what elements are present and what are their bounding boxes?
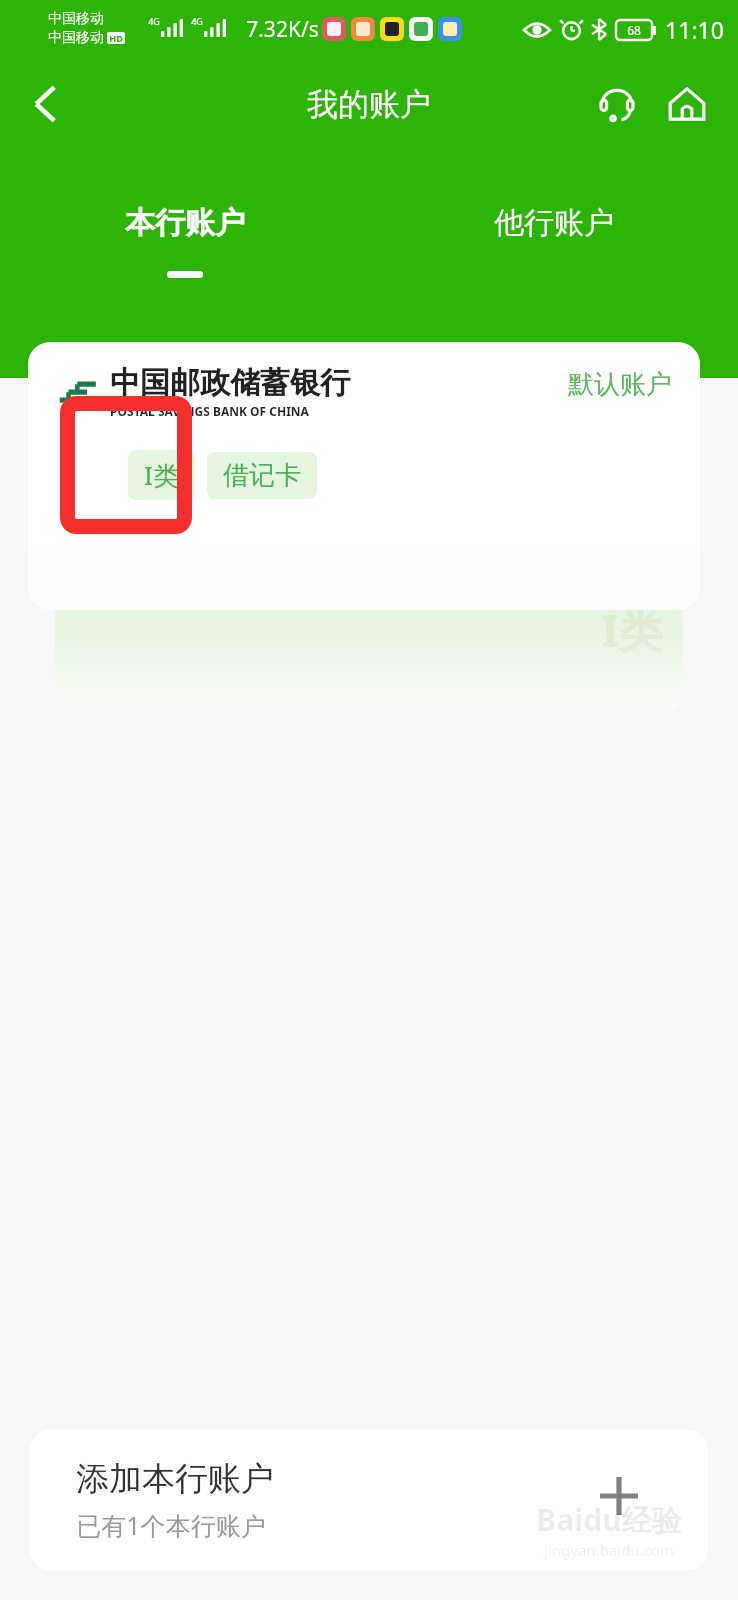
staticText: 已有1个本行账户 [76,1508,266,1542]
button[interactable]: Customer service [586,73,648,135]
staticText: 中国移动 [48,10,104,28]
staticText: 他行账户 [494,204,614,242]
staticText: 借记卡 [223,459,301,492]
button[interactable]: 本行账户 [0,188,369,308]
staticText: 11:10 [665,14,724,45]
staticText: 7.32K/s [246,15,319,44]
staticText: 4G [191,15,203,27]
staticText: HD [109,32,123,44]
staticText: Baidu经验 [536,1499,682,1540]
staticText: 4G [148,15,160,27]
staticText: jingyan.baidu.com [544,1540,674,1560]
button[interactable]: 他行账户 [369,188,738,308]
staticText: I类 [144,457,179,493]
staticText: 我的账户 [307,85,431,124]
button[interactable]: 添加本行账户 [30,1430,708,1570]
staticText: I类 [601,600,663,660]
staticText: 中国移动 [48,29,104,47]
button[interactable]: Back [14,73,76,135]
staticText: 本行账户 [125,204,245,242]
staticText: 中国邮政储蓄银行 [110,364,350,402]
button[interactable]: Home [656,73,718,135]
staticText: POSTAL SAVINGS BANK OF CHINA [110,403,309,419]
button[interactable]: 中国邮政储蓄银行 [28,342,700,610]
staticText: 默认账户 [568,368,672,401]
staticText: 添加本行账户 [76,1458,274,1500]
staticText: 68 [627,22,641,38]
